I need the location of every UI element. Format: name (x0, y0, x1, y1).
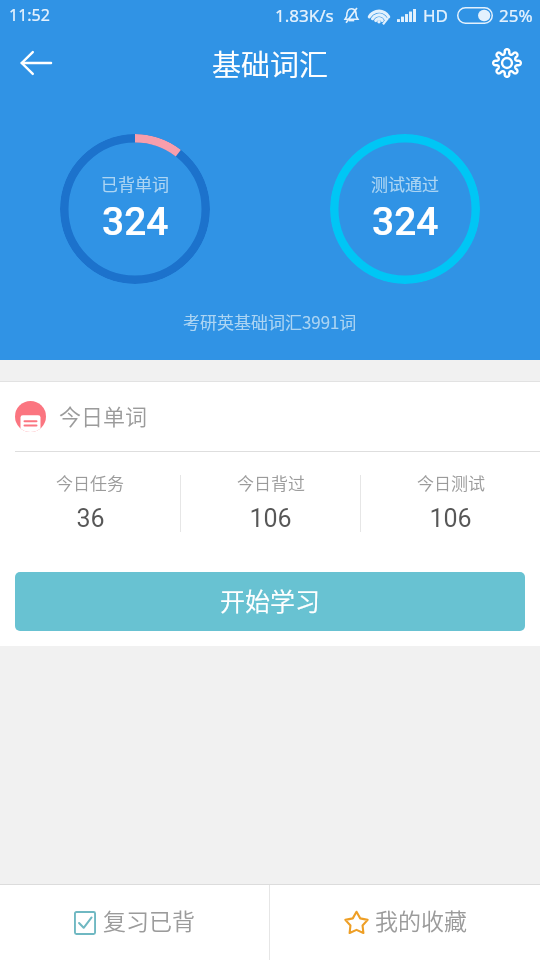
button[interactable]: 复习已背 (0, 885, 269, 960)
button[interactable]: 测试通过 (330, 134, 480, 284)
button[interactable]: 开始学习 (15, 572, 525, 631)
button[interactable]: 我的收藏 (270, 885, 540, 960)
staticText: 106 (249, 504, 292, 533)
button[interactable]: Back (10, 37, 62, 89)
staticText: 测试通过 (371, 171, 439, 196)
staticText: 已背单词 (101, 171, 169, 196)
staticText: 今日背过 (237, 470, 305, 495)
staticText: 我的收藏 (375, 903, 467, 936)
staticText: HD (423, 4, 449, 27)
button[interactable]: Settings (481, 37, 533, 89)
staticText: 324 (102, 199, 169, 245)
staticText: 106 (429, 504, 472, 533)
staticText: 考研英基础词汇3991词 (183, 309, 357, 334)
staticText: 今日任务 (56, 470, 124, 495)
staticText: 今日单词 (59, 399, 148, 431)
staticText: 1.83K/s (275, 4, 334, 27)
staticText: 复习已背 (103, 903, 195, 936)
staticText: 基础词汇 (212, 42, 329, 84)
button[interactable]: 已背单词 (60, 134, 210, 284)
staticText: 324 (372, 199, 439, 245)
staticText: 11:52 (9, 4, 50, 26)
staticText: 今日测试 (417, 470, 485, 495)
staticText: 开始学习 (220, 582, 321, 618)
staticText: 25% (499, 4, 533, 27)
staticText: 36 (76, 504, 105, 533)
